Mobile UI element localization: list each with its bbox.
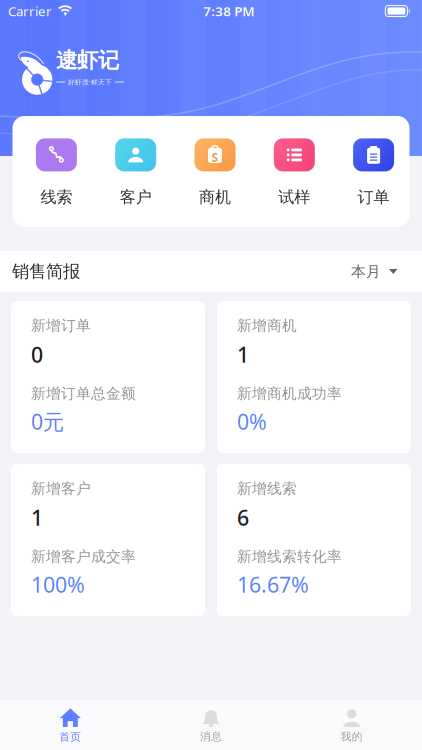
staticText: 销售简报 (12, 261, 80, 282)
staticText: 新增商机成功率 (237, 384, 342, 402)
button[interactable]: 客户 (115, 138, 156, 207)
staticText: S (211, 149, 218, 165)
button[interactable]: 首页 (0, 698, 141, 750)
staticText: 6 (237, 503, 249, 532)
staticText: 0元 (31, 407, 64, 436)
staticText: 新增线索 (237, 479, 297, 497)
staticText: 线索 (40, 187, 72, 207)
button[interactable]: S (194, 138, 235, 207)
staticText: 新增订单总金额 (31, 384, 136, 402)
staticText: Carrier (8, 2, 52, 20)
button[interactable]: 消息 (141, 699, 281, 750)
staticText: 1 (237, 340, 249, 369)
staticText: 新增订单 (31, 316, 91, 334)
staticText: 0 (31, 340, 43, 369)
button[interactable]: 订单 (353, 138, 394, 207)
staticText: 消息 (200, 730, 222, 743)
staticText: 逮虾记 (56, 47, 119, 74)
staticText: 订单 (358, 187, 390, 207)
staticText: 我的 (341, 730, 363, 743)
button[interactable]: 线索 (36, 138, 77, 207)
staticText: 新增客户 (31, 479, 91, 497)
staticText: 7:38 PM (203, 2, 254, 20)
staticText: 试样 (278, 187, 310, 207)
staticText: 新增客户成交率 (31, 547, 136, 565)
staticText: 0% (237, 407, 267, 436)
staticText: 首页 (59, 730, 81, 743)
staticText: 16.67% (237, 570, 309, 599)
staticText: 1 (31, 503, 43, 532)
staticText: 新增商机 (237, 316, 297, 334)
button[interactable]: 我的 (281, 699, 422, 750)
staticText: 商机 (199, 187, 231, 207)
staticText: 好虾漂·鲜天下 (68, 78, 112, 86)
button[interactable]: 本月 (351, 262, 398, 280)
button[interactable]: 试样 (274, 138, 315, 207)
staticText: 本月 (351, 262, 381, 280)
staticText: 100% (31, 570, 85, 599)
staticText: 新增线索转化率 (237, 547, 342, 565)
staticText: 客户 (120, 187, 152, 207)
